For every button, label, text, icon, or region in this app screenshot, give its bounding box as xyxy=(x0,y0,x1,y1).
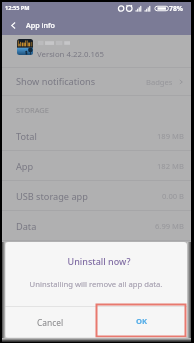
staticText: Show notifications xyxy=(16,75,96,88)
button[interactable]: Cancel xyxy=(5,307,96,338)
button[interactable]: App xyxy=(0,151,194,181)
button[interactable]: USB storage app xyxy=(0,181,194,211)
staticText: Badges xyxy=(146,77,173,87)
staticText: 78% xyxy=(169,4,183,13)
staticText: Cancel xyxy=(37,317,64,328)
button[interactable]: Show notifications xyxy=(0,68,194,95)
button[interactable]: Total xyxy=(0,121,194,151)
staticText: 6.99 MB xyxy=(155,221,184,231)
staticText: 12:55 PM xyxy=(5,4,30,12)
staticText: 189 MB xyxy=(157,131,184,141)
staticText: App xyxy=(16,160,34,173)
staticText: Uninstalling will remove all app data. xyxy=(5,279,187,289)
staticText: Data xyxy=(16,220,37,233)
staticText: Version 4.22.0.165 xyxy=(37,49,104,60)
staticText: USB storage app xyxy=(16,190,88,203)
staticText: STORAGE xyxy=(16,105,49,115)
button[interactable]: Data xyxy=(0,211,194,241)
staticText: 182 MB xyxy=(157,161,184,171)
staticText: App info xyxy=(26,20,55,30)
staticText: Uninstall now? xyxy=(8,255,187,267)
button[interactable]: OK xyxy=(96,307,187,338)
staticText: Total xyxy=(16,130,37,143)
staticText: 0.00 B xyxy=(162,191,184,201)
button[interactable]: Back xyxy=(0,15,26,35)
staticText: OK xyxy=(136,316,148,326)
